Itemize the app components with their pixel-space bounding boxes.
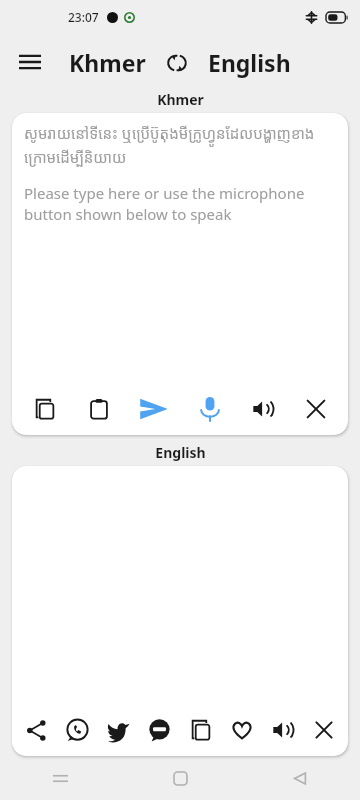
button[interactable]: Speak bbox=[262, 704, 303, 756]
staticText: Please type here or use the microphone b… bbox=[24, 183, 336, 225]
button[interactable]: Clear bbox=[303, 704, 344, 756]
button[interactable]: WhatsApp bbox=[57, 704, 98, 756]
staticText: English bbox=[208, 47, 291, 78]
button[interactable]: Copy bbox=[18, 383, 72, 435]
button[interactable]: Menu bbox=[8, 40, 52, 84]
staticText: សូមរាយនៅទីនេះ ឬប្រើប៊ូតុងមីក្រូហ្វូនដែលប… bbox=[24, 123, 336, 167]
button[interactable]: Khmer bbox=[65, 43, 150, 82]
staticText: 23:07 bbox=[68, 9, 99, 25]
button[interactable]: Recent apps bbox=[0, 756, 120, 800]
staticText: Khmer bbox=[69, 47, 146, 78]
staticText: Khmer bbox=[157, 90, 204, 109]
button[interactable]: Clear bbox=[289, 383, 342, 435]
button[interactable]: Translate bbox=[125, 383, 183, 435]
button[interactable]: Microphone bbox=[183, 383, 236, 435]
button[interactable]: Swap languages bbox=[160, 46, 194, 80]
button[interactable]: Home bbox=[120, 756, 240, 800]
button[interactable]: Paste bbox=[72, 383, 125, 435]
button[interactable]: English bbox=[204, 43, 295, 82]
button[interactable]: Back bbox=[240, 756, 360, 800]
button[interactable]: Copy bbox=[180, 704, 221, 756]
button[interactable]: Share bbox=[16, 704, 57, 756]
button[interactable]: SMS bbox=[139, 704, 180, 756]
staticText: English bbox=[155, 443, 206, 462]
button[interactable]: Favourite bbox=[221, 704, 262, 756]
button[interactable]: Speak bbox=[236, 383, 289, 435]
button[interactable]: Twitter bbox=[98, 704, 139, 756]
